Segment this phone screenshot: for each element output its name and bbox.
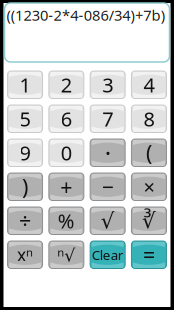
staticText: × bbox=[143, 173, 154, 200]
button[interactable]: × bbox=[131, 173, 166, 200]
staticText: ÷ bbox=[19, 207, 31, 235]
button[interactable]: 8 bbox=[131, 105, 166, 132]
staticText: 0 bbox=[61, 139, 72, 166]
button[interactable]: xⁿ bbox=[7, 241, 42, 268]
button[interactable]: √ bbox=[90, 207, 125, 234]
staticText: 2 bbox=[61, 71, 72, 98]
button[interactable]: ( bbox=[131, 139, 166, 166]
button[interactable]: 3 bbox=[90, 71, 125, 98]
button[interactable]: ÷ bbox=[7, 207, 42, 234]
button[interactable]: 4 bbox=[131, 71, 166, 98]
button[interactable]: − bbox=[90, 173, 125, 200]
button[interactable]: + bbox=[49, 173, 84, 200]
staticText: = bbox=[143, 241, 155, 269]
staticText: 9 bbox=[19, 139, 30, 166]
button[interactable]: 0 bbox=[49, 139, 84, 166]
staticText: 5 bbox=[19, 105, 30, 132]
button[interactable]: · bbox=[90, 139, 125, 166]
staticText: + bbox=[60, 173, 72, 201]
button[interactable]: ⁿ√ bbox=[49, 241, 84, 268]
staticText: ) bbox=[22, 173, 28, 201]
staticText: 8 bbox=[143, 105, 154, 132]
staticText: √ bbox=[101, 209, 115, 233]
button[interactable]: 6 bbox=[49, 105, 84, 132]
button[interactable]: % bbox=[49, 207, 84, 234]
staticText: − bbox=[102, 173, 114, 201]
button[interactable]: 5 bbox=[7, 105, 42, 132]
button[interactable]: 9 bbox=[7, 139, 42, 166]
staticText: 4 bbox=[143, 71, 154, 98]
staticText: 1 bbox=[19, 71, 30, 98]
staticText: 6 bbox=[61, 105, 72, 132]
staticText: xⁿ bbox=[17, 243, 33, 266]
button[interactable]: = bbox=[131, 241, 166, 268]
staticText: ∛ bbox=[142, 209, 156, 233]
button[interactable]: 2 bbox=[49, 71, 84, 98]
button[interactable]: 7 bbox=[90, 105, 125, 132]
staticText: Clear bbox=[92, 246, 124, 264]
staticText: 3 bbox=[102, 71, 113, 98]
staticText: · bbox=[105, 137, 111, 169]
button[interactable]: Clear bbox=[90, 241, 125, 268]
button[interactable]: ∛ bbox=[131, 207, 166, 234]
staticText: ( bbox=[146, 139, 152, 167]
button[interactable]: ) bbox=[7, 173, 42, 200]
button[interactable]: 1 bbox=[7, 71, 42, 98]
staticText: ⁿ√ bbox=[57, 243, 75, 266]
staticText: 7 bbox=[102, 105, 113, 132]
staticText: ((1230-2*4-086/34)+7b) bbox=[6, 5, 165, 25]
staticText: % bbox=[58, 207, 75, 234]
